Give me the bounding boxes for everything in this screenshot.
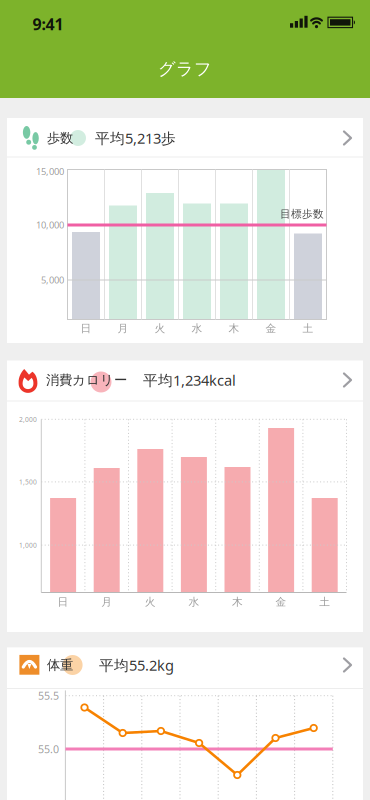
staticText: 1,500 [19,477,37,486]
staticText: 水 [188,595,199,608]
staticText: 体重 [47,657,73,673]
staticText: 土 [302,322,313,335]
staticText: 55.5 [38,689,59,703]
button[interactable]: 体重 [7,647,363,800]
staticText: 水 [191,322,202,335]
button[interactable]: 消費カロリー [7,360,363,632]
staticText: 5,000 [41,274,64,286]
staticText: 月 [101,595,112,608]
staticText: 平均1,234kcal [143,370,236,390]
staticText: 火 [154,322,165,335]
staticText: 月 [117,322,128,335]
staticText: 火 [145,595,156,608]
staticText: 9:41 [32,13,63,35]
staticText: 目標歩数 [280,207,324,220]
staticText: 金 [276,595,287,608]
staticText: 金 [265,322,276,335]
staticText: 15,000 [36,165,64,178]
staticText: 消費カロリー [46,372,127,388]
staticText: 歩数 [47,130,73,146]
staticText: 1,000 [19,541,37,550]
staticText: グラフ [158,58,212,80]
staticText: 日 [80,322,91,335]
staticText: 55.0 [38,742,59,756]
staticText: 2,000 [19,415,37,424]
staticText: 日 [58,595,69,608]
staticText: 平均55.2kg [99,655,174,675]
staticText: 木 [228,322,239,335]
button[interactable]: 歩数 [7,118,363,343]
staticText: 土 [319,595,330,608]
staticText: 平均5,213歩 [95,128,176,148]
staticText: 10,000 [36,219,64,231]
staticText: 木 [232,595,243,608]
